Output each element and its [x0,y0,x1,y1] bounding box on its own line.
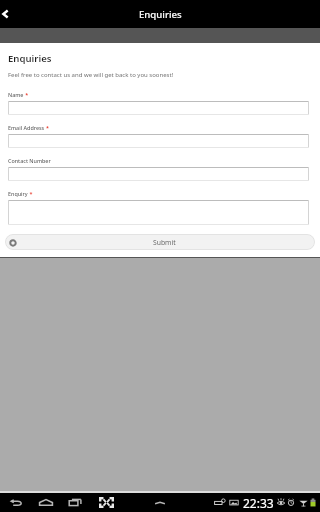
button[interactable] [8,134,309,148]
staticText: Contact Number [8,157,51,164]
button[interactable] [8,167,309,181]
staticText: 22:33 [243,495,274,511]
button[interactable]: Show notifications [149,493,171,512]
button[interactable]: Back [5,493,26,512]
button[interactable]: Submit [5,234,315,250]
staticText: Name * [8,91,29,98]
button[interactable]: Full screen [96,493,117,512]
button[interactable] [8,101,309,115]
staticText: Feel free to contact us and we will get … [8,71,174,79]
button[interactable] [8,200,309,225]
staticText: Email Address * [8,124,49,131]
button[interactable]: Home [35,493,56,512]
button[interactable]: Back [0,0,22,28]
button[interactable]: Recent apps [65,493,86,512]
staticText: Enquiries [139,8,182,21]
staticText: Enquiries [8,52,52,65]
staticText: Submit [153,238,176,247]
staticText: Enquiry * [8,190,33,197]
